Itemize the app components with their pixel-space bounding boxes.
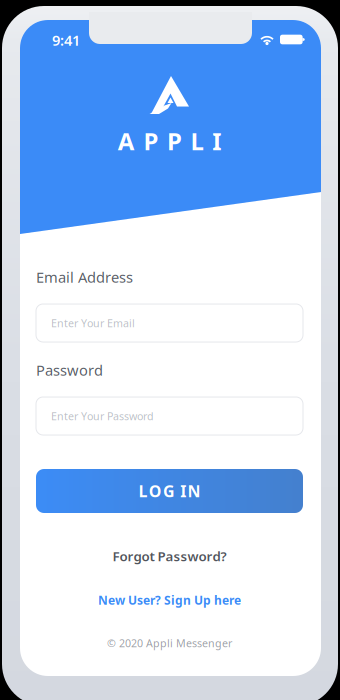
staticText: Password (36, 360, 103, 380)
staticText: New User? Sign Up here (98, 592, 241, 608)
staticText: Enter Your Password (51, 409, 154, 423)
staticText: A (118, 125, 135, 157)
staticText: Email Address (36, 267, 133, 287)
staticText: I (212, 125, 221, 157)
button[interactable]: New User? Sign Up here (36, 588, 303, 612)
staticText: I (180, 480, 186, 502)
staticText: P (143, 125, 158, 157)
staticText: O (149, 480, 162, 502)
button[interactable]: L (36, 469, 303, 513)
staticText: L (138, 480, 147, 502)
staticText: Forgot Password? (112, 547, 226, 565)
staticText: Enter Your Email (51, 316, 135, 330)
staticText: © 2020 Appli Messenger (107, 636, 232, 650)
button[interactable]: Forgot Password? (36, 544, 303, 568)
staticText: G (163, 480, 175, 502)
staticText: 9:41 (52, 30, 80, 50)
staticText: L (191, 125, 204, 157)
staticText: P (167, 125, 182, 157)
staticText: N (187, 480, 200, 502)
